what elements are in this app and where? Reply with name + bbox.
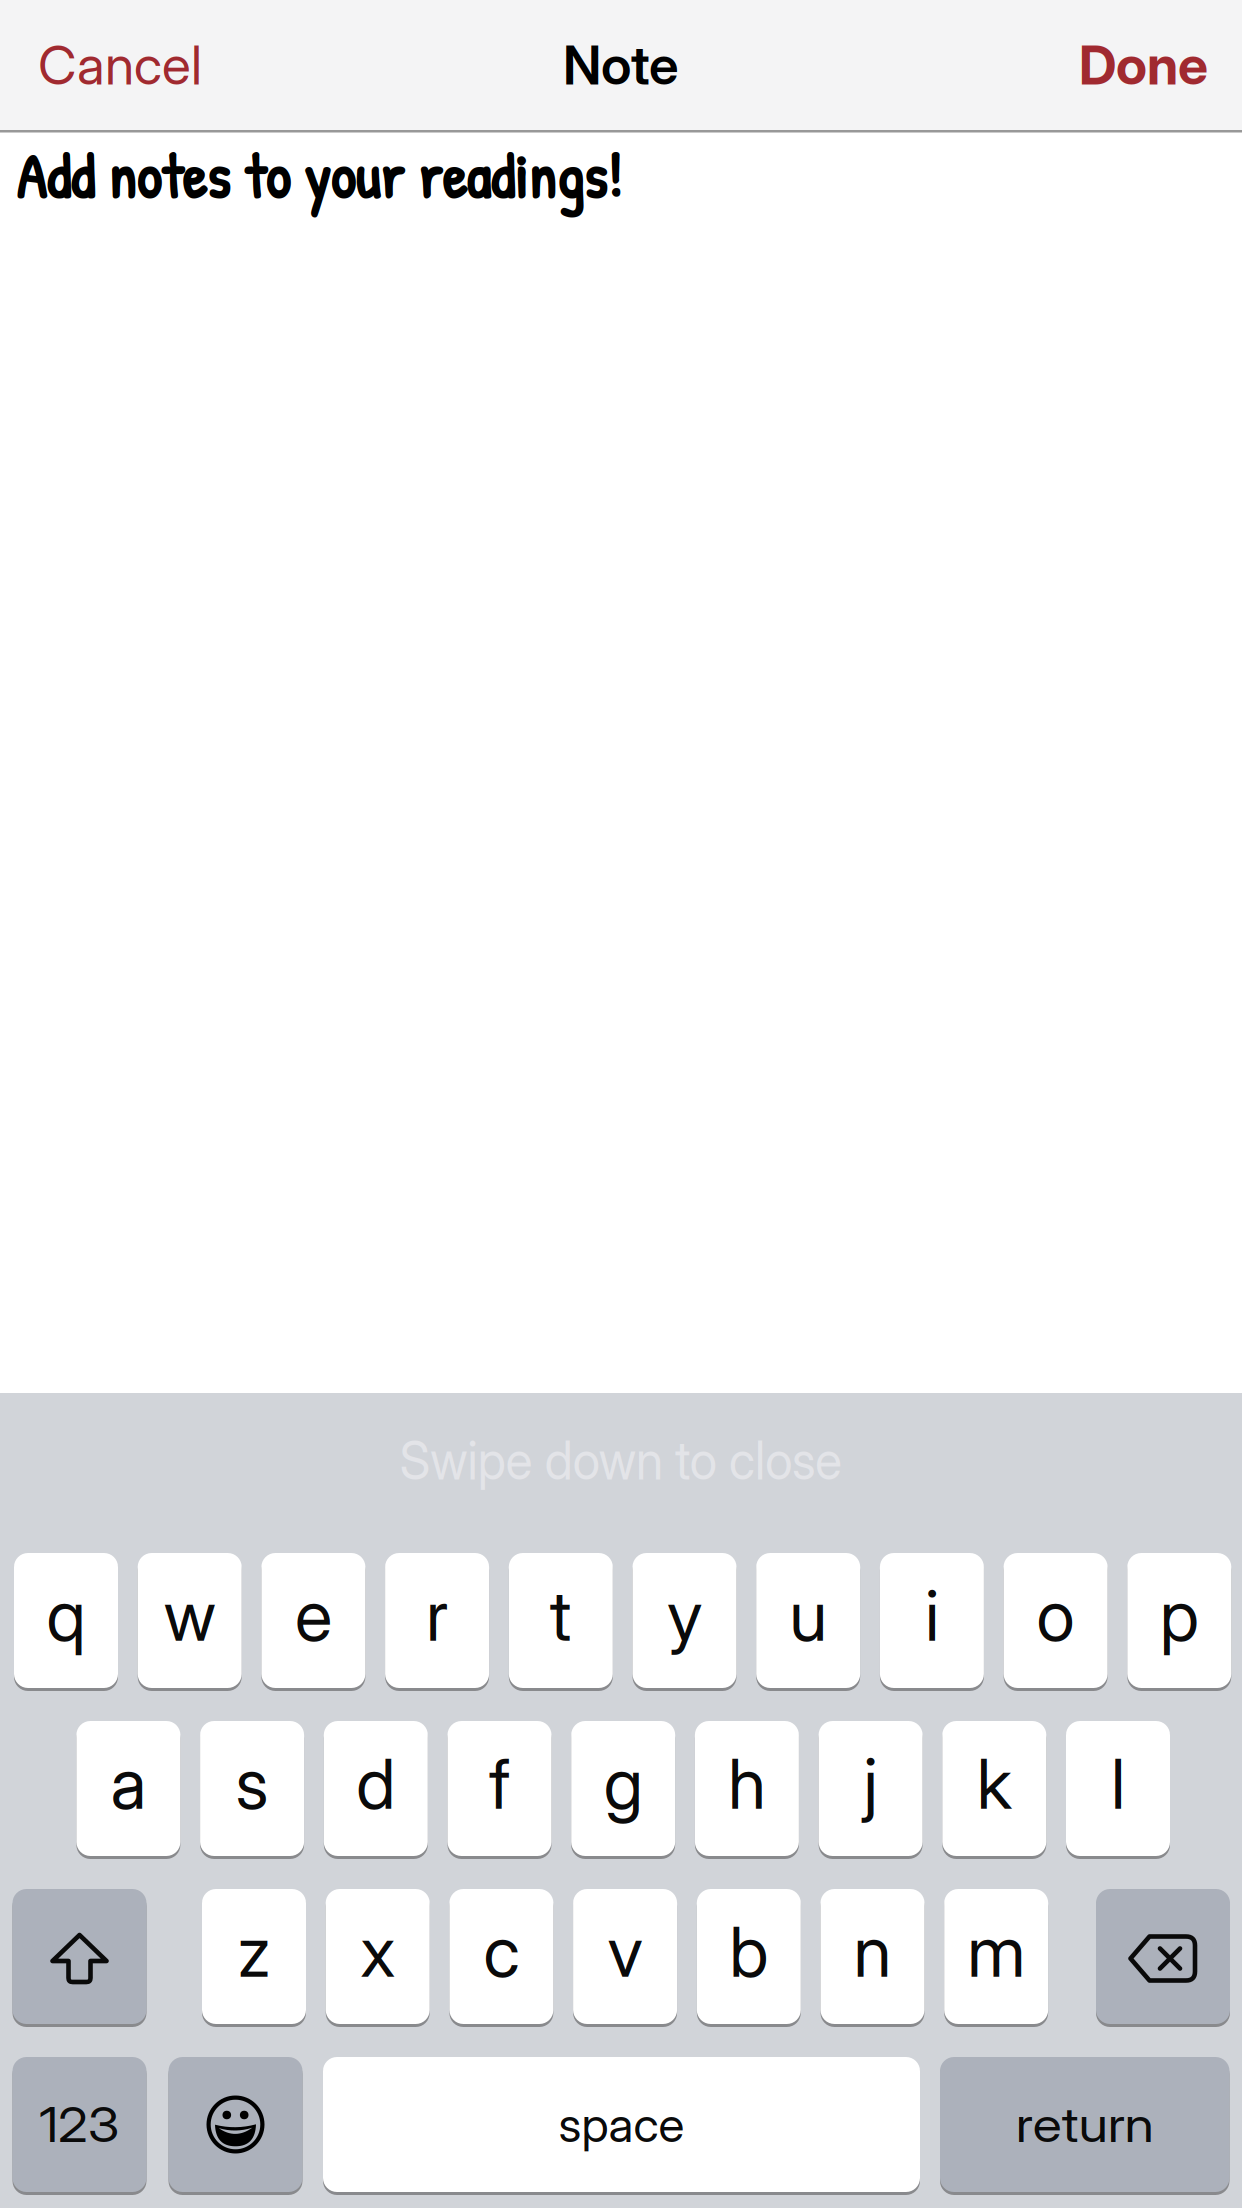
button[interactable]: e <box>261 1553 365 1688</box>
button[interactable]: Delete <box>1096 1889 1230 2024</box>
button[interactable]: t <box>509 1553 613 1688</box>
button[interactable]: Emoji <box>168 2057 302 2192</box>
button[interactable]: s <box>200 1721 304 1856</box>
staticText: c <box>483 1910 519 1993</box>
button[interactable]: space <box>323 2057 920 2192</box>
button[interactable]: l <box>1066 1721 1170 1856</box>
button[interactable]: k <box>942 1721 1046 1856</box>
button[interactable]: x <box>326 1889 430 2024</box>
button[interactable]: 123 <box>12 2057 146 2192</box>
button[interactable]: p <box>1127 1553 1231 1688</box>
staticText: l <box>1111 1742 1125 1825</box>
staticText: i <box>925 1574 939 1657</box>
button[interactable]: Cancel <box>38 33 202 97</box>
staticText: p <box>1160 1574 1199 1657</box>
staticText: r <box>426 1574 448 1657</box>
staticText: k <box>977 1742 1012 1825</box>
staticText: y <box>667 1574 702 1657</box>
staticText: e <box>295 1574 332 1657</box>
staticText: v <box>608 1910 643 1993</box>
button[interactable]: o <box>1004 1553 1108 1688</box>
button[interactable]: j <box>819 1721 923 1856</box>
button[interactable]: return <box>940 2057 1229 2192</box>
staticText: d <box>356 1742 395 1825</box>
staticText: n <box>853 1910 891 1993</box>
button[interactable]: Shift <box>12 1889 146 2024</box>
button[interactable]: c <box>449 1889 553 2024</box>
staticText: Cancel <box>38 33 202 97</box>
button[interactable]: d <box>324 1721 428 1856</box>
button[interactable]: Done <box>1079 33 1208 97</box>
staticText: j <box>864 1742 878 1825</box>
staticText: f <box>489 1742 510 1825</box>
button[interactable]: v <box>573 1889 677 2024</box>
staticText: Add notes to your readings! <box>16 134 622 217</box>
staticText: m <box>967 1910 1025 1993</box>
staticText: Note <box>563 33 679 97</box>
button[interactable]: r <box>385 1553 489 1688</box>
staticText: h <box>728 1742 766 1825</box>
button[interactable]: a <box>76 1721 180 1856</box>
button[interactable]: n <box>820 1889 924 2024</box>
button[interactable]: z <box>202 1889 306 2024</box>
button[interactable]: w <box>138 1553 242 1688</box>
button[interactable]: h <box>695 1721 799 1856</box>
staticText: b <box>729 1910 768 1993</box>
staticText: t <box>550 1574 572 1657</box>
button[interactable]: y <box>632 1553 736 1688</box>
staticText: a <box>110 1742 146 1825</box>
staticText: z <box>237 1910 270 1993</box>
button[interactable]: m <box>944 1889 1048 2024</box>
staticText: o <box>1037 1574 1075 1657</box>
staticText: return <box>1023 2095 1146 2154</box>
button[interactable]: i <box>880 1553 984 1688</box>
button[interactable]: u <box>756 1553 860 1688</box>
staticText: q <box>46 1574 85 1657</box>
staticText: u <box>789 1574 827 1657</box>
button[interactable]: f <box>447 1721 551 1856</box>
button[interactable]: q <box>14 1553 118 1688</box>
staticText: 123 <box>43 2095 116 2154</box>
button[interactable]: g <box>571 1721 675 1856</box>
staticText: g <box>604 1742 643 1825</box>
staticText: Swipe down to close <box>383 1428 859 1492</box>
staticText: s <box>236 1742 269 1825</box>
staticText: w <box>164 1574 216 1657</box>
button[interactable]: b <box>697 1889 801 2024</box>
staticText: x <box>360 1910 395 1993</box>
staticText: Done <box>1079 33 1208 97</box>
staticText: space <box>558 2095 684 2154</box>
